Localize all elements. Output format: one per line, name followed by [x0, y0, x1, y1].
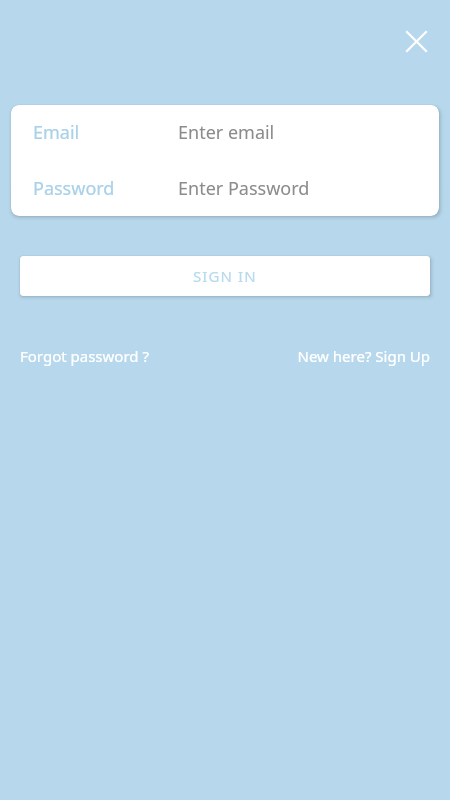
staticText: Email: [33, 120, 80, 145]
staticText: SIGN IN: [193, 266, 257, 286]
staticText: Forgot password ?: [20, 346, 149, 366]
staticText: New here? Sign Up: [297, 346, 430, 366]
staticText: Password: [33, 176, 115, 201]
staticText: Enter Password: [178, 176, 310, 201]
staticText: Enter email: [178, 120, 275, 145]
button[interactable]: SIGN IN: [20, 256, 430, 296]
button[interactable]: Close: [396, 21, 436, 61]
button[interactable]: Email: [11, 105, 439, 160]
button[interactable]: Forgot password ?: [20, 346, 149, 366]
button[interactable]: Password: [11, 160, 439, 216]
button[interactable]: New here? Sign Up: [297, 346, 430, 366]
